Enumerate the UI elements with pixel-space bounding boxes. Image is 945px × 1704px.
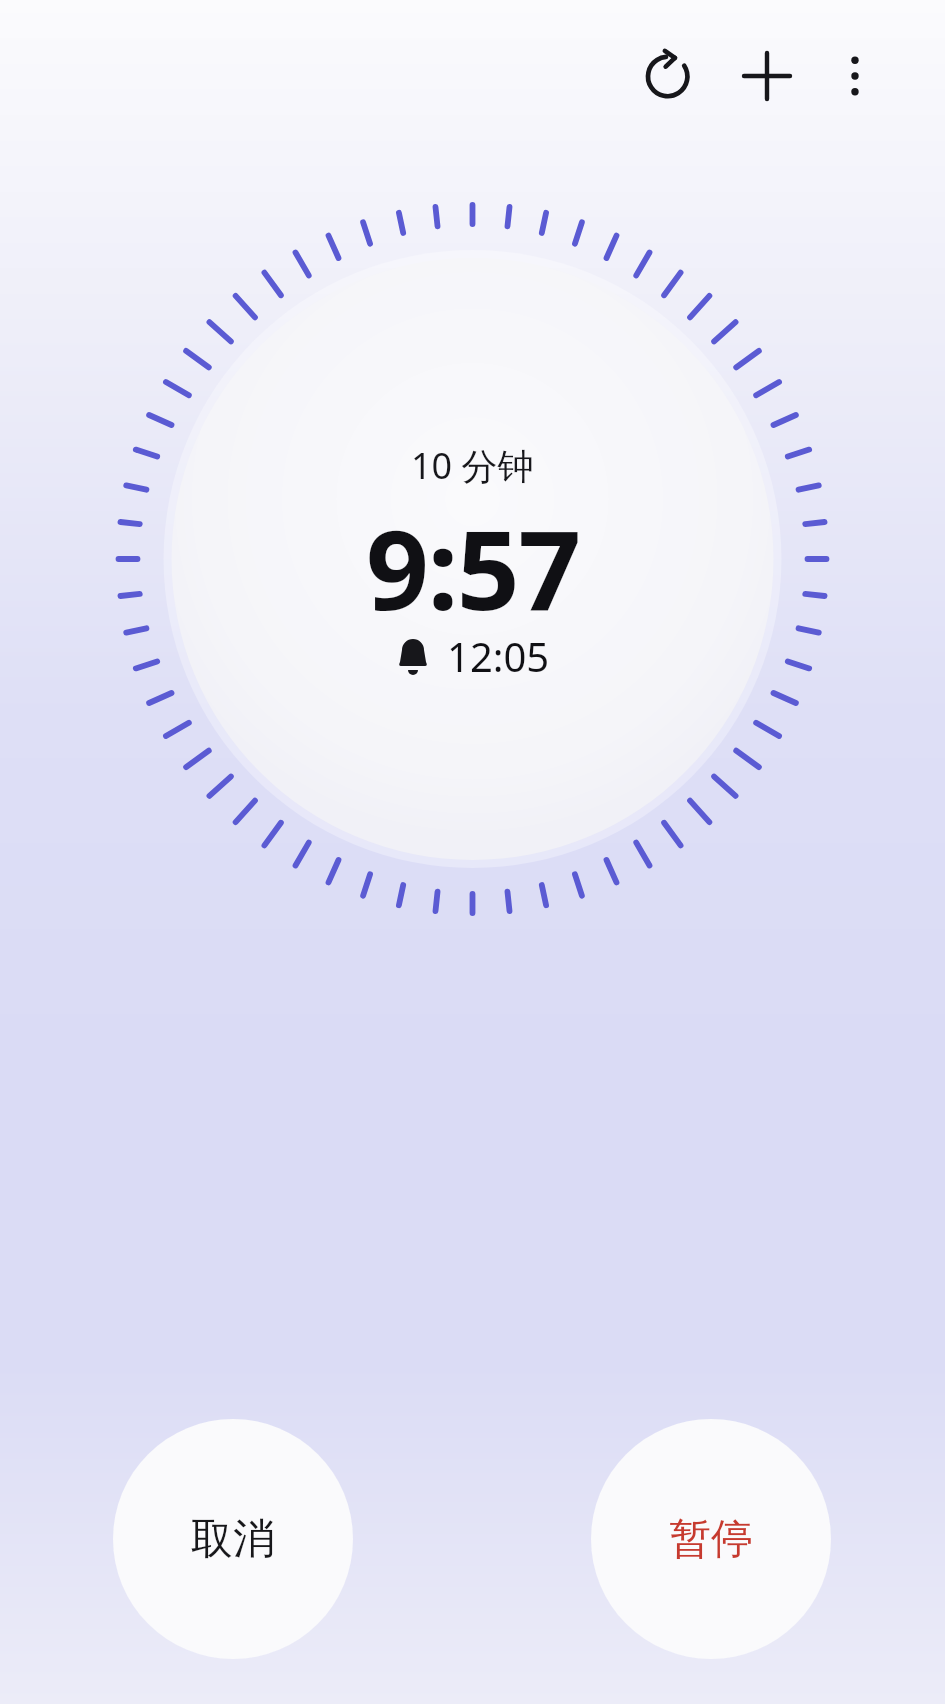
staticText: 9:57 — [366, 492, 580, 642]
button[interactable] — [743, 52, 791, 100]
button[interactable]: 暂停 — [591, 1419, 831, 1659]
staticText: 暂停 — [669, 1513, 753, 1566]
button[interactable]: 取消 — [113, 1419, 353, 1659]
button[interactable] — [831, 52, 879, 100]
staticText: 取消 — [191, 1513, 275, 1566]
staticText: 10 分钟 — [411, 441, 534, 490]
button[interactable] — [644, 52, 692, 100]
staticText: 12:05 — [447, 629, 550, 683]
